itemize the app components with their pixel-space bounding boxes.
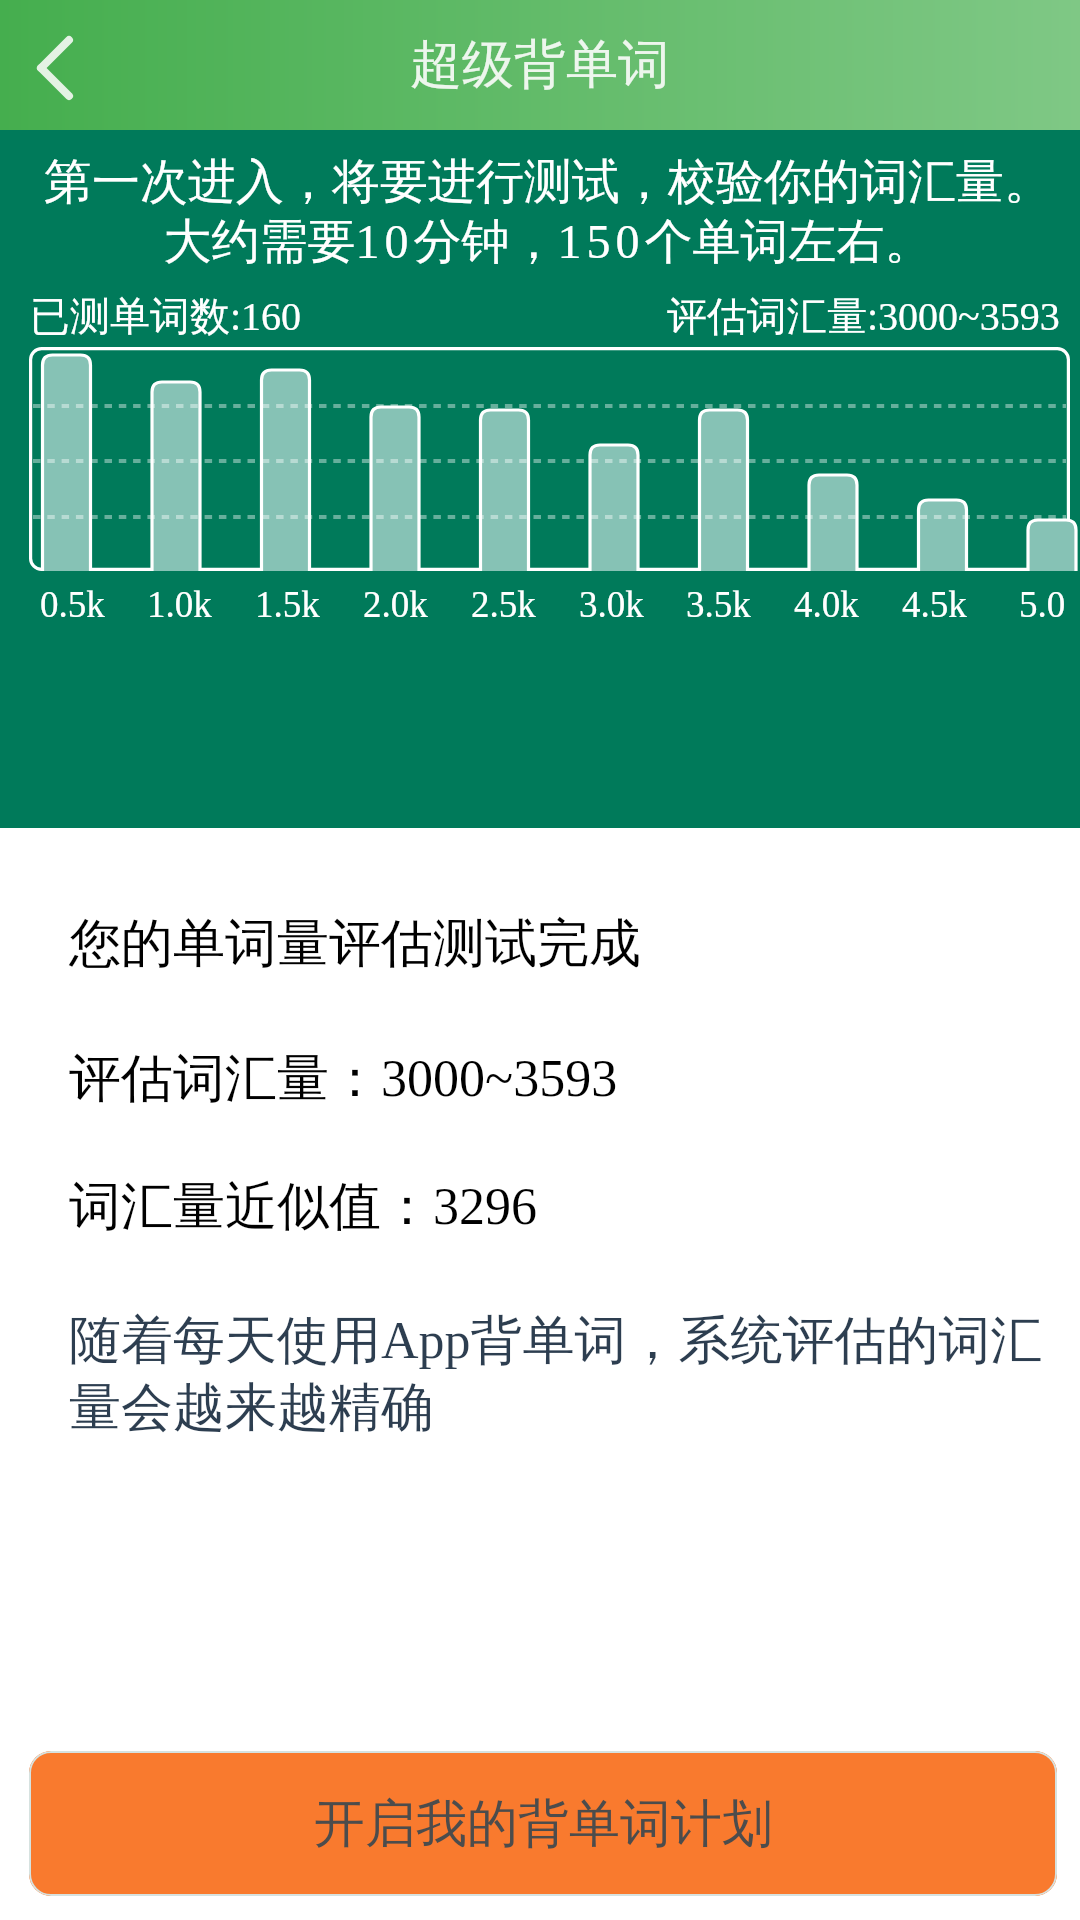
staticText: 已测单词数:160 [30,291,302,341]
staticText: 词汇量近似值：3296 [69,1174,537,1240]
staticText: 评估词汇量:3000~3593 [667,291,1060,341]
staticText: 您的单词量评估测试完成 [69,911,641,977]
button[interactable]: Back [0,10,110,120]
staticText: 3.5k [686,584,751,625]
staticText: 2.5k [471,584,536,625]
staticText: 5.0 [1019,584,1066,625]
button[interactable]: 开启我的背单词计划 [29,1751,1057,1896]
staticText: 1.5k [255,584,320,625]
staticText: 4.5k [902,584,967,625]
staticText: 第一次进入，将要进行测试，校验你的词汇量。 [16,152,1080,212]
staticText: 2.0k [363,584,428,625]
staticText: 4.0k [794,584,859,625]
staticText: 评估词汇量：3000~3593 [69,1046,618,1112]
staticText: 开启我的背单词计划 [314,1792,773,1856]
staticText: 超级背单词 [410,32,670,98]
staticText: 随着每天使用App背单词，系统评估的词汇量会越来越精确 [69,1308,1076,1440]
staticText: 0.5k [40,584,105,625]
staticText: 3.0k [579,584,644,625]
staticText: 1.0k [147,584,212,625]
staticText: 大约需要10分钟，150个单词左右。 [16,212,1080,272]
